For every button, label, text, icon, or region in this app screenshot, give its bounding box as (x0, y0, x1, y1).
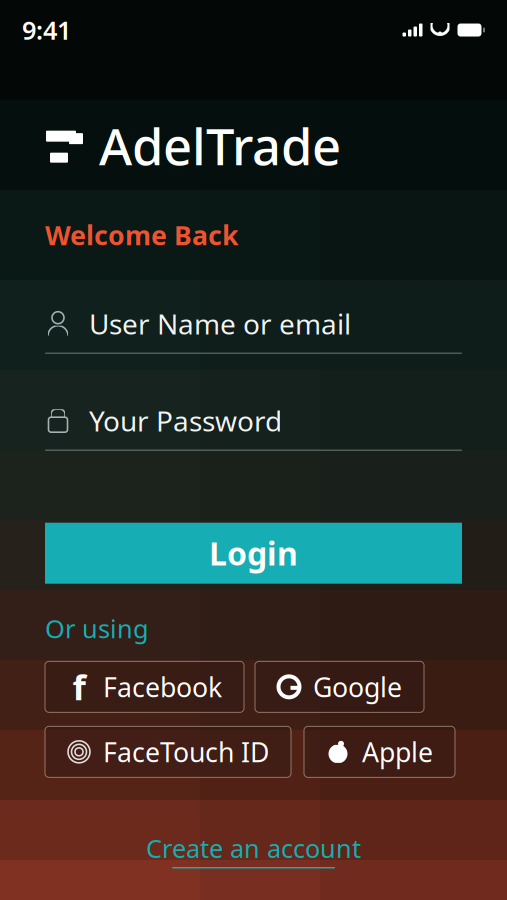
staticText: Google (313, 669, 402, 704)
button[interactable]: Login (45, 523, 462, 584)
staticText: Your Password (89, 402, 282, 439)
staticText: FaceTouch ID (103, 734, 269, 769)
staticText: Facebook (103, 669, 222, 704)
staticText: AdelTrade (99, 112, 341, 179)
staticText: Login (209, 532, 298, 574)
staticText: Or using (45, 612, 149, 645)
button[interactable]: User Name or email (0, 305, 507, 354)
button[interactable]: FaceTouch ID (45, 726, 291, 777)
button[interactable]: Apple (304, 726, 455, 777)
staticText: Apple (362, 734, 433, 769)
staticText: User Name or email (89, 305, 351, 342)
button[interactable]: f (45, 661, 244, 712)
staticText: Welcome Back (45, 217, 239, 253)
staticText: 9:41 (22, 13, 71, 47)
staticText: Create an account (146, 831, 361, 865)
staticText: f (72, 664, 85, 710)
button[interactable]: Your Password (0, 402, 507, 451)
button[interactable]: Create an account (136, 825, 371, 874)
button[interactable]: Google (255, 661, 424, 712)
